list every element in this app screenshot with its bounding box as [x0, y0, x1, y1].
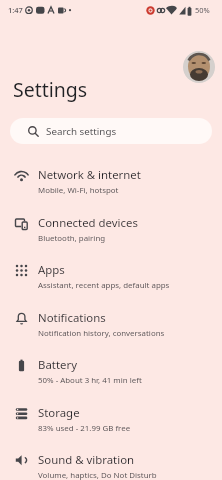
button[interactable]: Storage	[0, 395, 222, 443]
button[interactable]	[183, 51, 215, 83]
button[interactable]: Network & internet	[0, 157, 222, 205]
staticText: Notification history, conversations	[38, 328, 165, 339]
staticText: Search settings	[46, 125, 117, 138]
staticText: Mobile, Wi-Fi, hotspot	[38, 185, 119, 196]
staticText: Assistant, recent apps, default apps	[38, 280, 170, 291]
button[interactable]: Sound & vibration	[0, 442, 222, 480]
button[interactable]: Notifications	[0, 300, 222, 348]
button[interactable]: Search settings	[10, 118, 212, 144]
staticText: 1:47	[8, 5, 23, 15]
staticText: Storage	[38, 405, 80, 421]
staticText: Settings	[13, 76, 88, 103]
staticText: Notifications	[38, 310, 106, 326]
staticText: Connected devices	[38, 215, 138, 231]
staticText: Apps	[38, 262, 65, 278]
staticText: 50%	[195, 5, 210, 15]
button[interactable]: Connected devices	[0, 205, 222, 253]
staticText: Bluetooth, pairing	[38, 233, 106, 244]
staticText: Network & internet	[38, 167, 141, 183]
staticText: 50% - About 3 hr, 41 min left	[38, 375, 142, 386]
button[interactable]: Apps	[0, 252, 222, 300]
button[interactable]: Battery	[0, 347, 222, 395]
staticText: 83% used - 21.99 GB free	[38, 423, 131, 434]
staticText: Battery	[38, 357, 77, 373]
staticText: Volume, haptics, Do Not Disturb	[38, 470, 157, 480]
staticText: Sound & vibration	[38, 452, 135, 468]
